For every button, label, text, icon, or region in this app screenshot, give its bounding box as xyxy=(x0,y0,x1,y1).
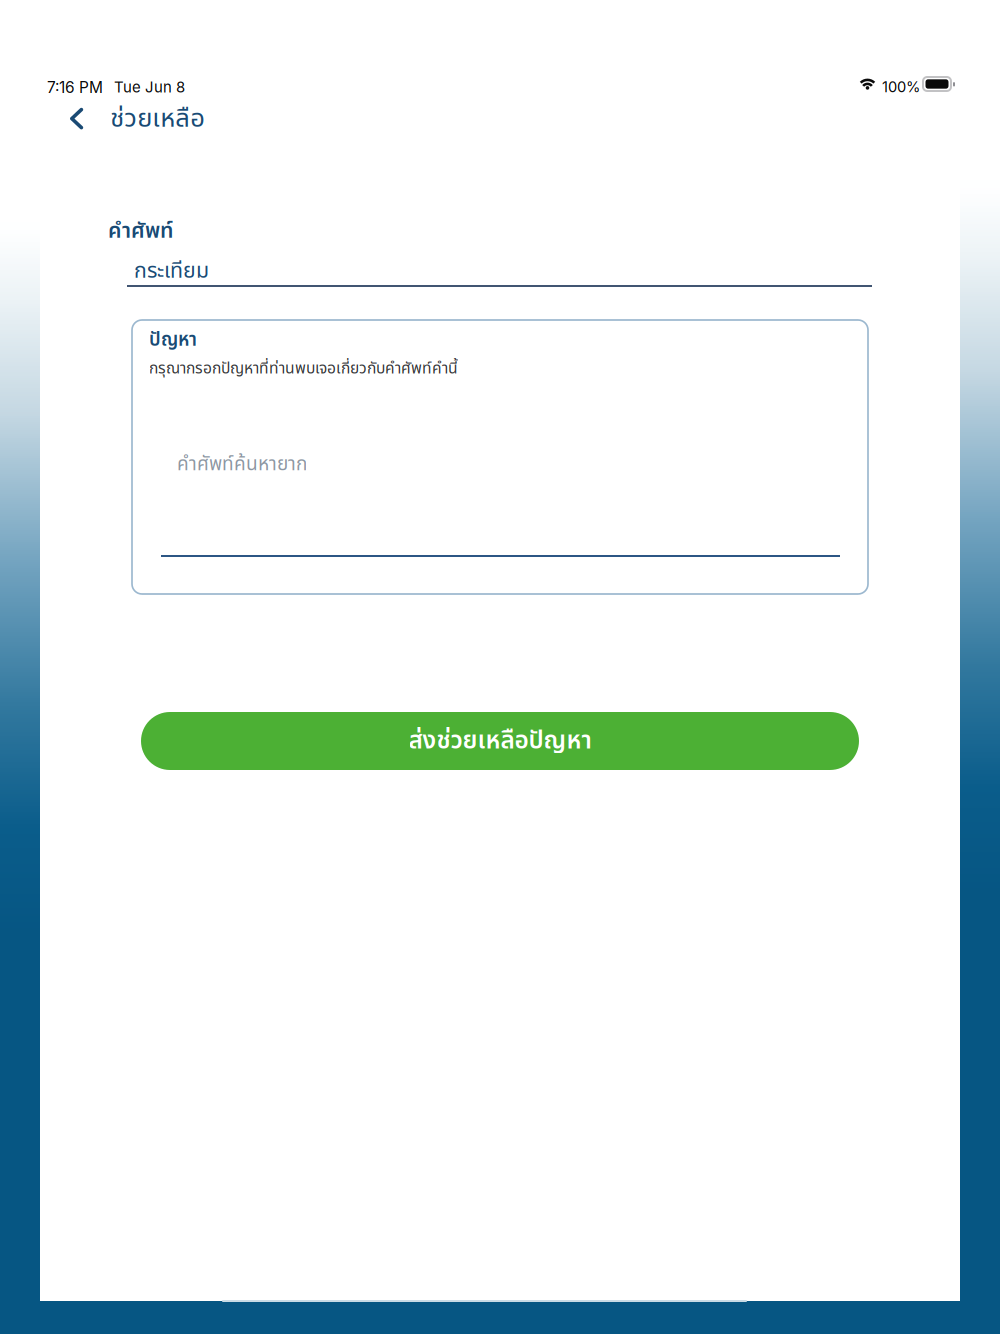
staticText: คำศัพท์ค้นหายาก xyxy=(177,450,307,479)
button[interactable]: ส่งช่วยเหลือปัญหา xyxy=(141,712,859,770)
staticText: ช่วยเหลือ xyxy=(110,100,205,138)
staticText: Tue Jun 8 xyxy=(114,78,185,96)
staticText: คำศัพท์ xyxy=(108,215,173,247)
button[interactable]: ช่วยเหลือ xyxy=(40,102,960,136)
staticText: ปัญหา xyxy=(149,326,197,354)
staticText: กระเทียม xyxy=(134,255,209,287)
staticText: 7:16 PM xyxy=(47,78,103,97)
staticText: กรุณากรอกปัญหาที่ท่านพบเจอเกี่ยวกับคำศัพ… xyxy=(149,357,458,381)
staticText: ส่งช่วยเหลือปัญหา xyxy=(408,723,591,759)
staticText: 100% xyxy=(882,78,920,96)
